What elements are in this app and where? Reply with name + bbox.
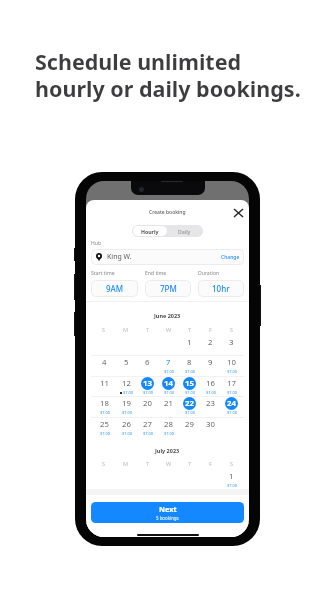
staticText: $7.00 <box>143 431 153 436</box>
staticText: $7.00 <box>143 390 153 395</box>
button[interactable]: 9 <box>204 356 217 369</box>
staticText: 5 bookings <box>156 515 179 521</box>
staticText: T <box>188 460 192 468</box>
button[interactable]: 16 <box>204 377 217 390</box>
staticText: 26 <box>122 419 131 430</box>
button[interactable]: 14 <box>162 377 175 390</box>
staticText: T <box>146 326 150 334</box>
staticText: 29 <box>185 419 194 430</box>
staticText: $7.00 <box>164 390 174 395</box>
staticText: $7.00 <box>164 369 174 374</box>
staticText: 6 <box>145 357 150 368</box>
button[interactable]: 7 <box>162 356 175 369</box>
button[interactable]: Hourly <box>133 226 167 236</box>
staticText: $7.00 <box>185 390 195 395</box>
staticText: July 2023 <box>155 447 180 454</box>
staticText: Daily <box>178 228 191 235</box>
staticText: King W. <box>107 252 132 262</box>
button[interactable]: 17 <box>225 377 238 390</box>
staticText: Create booking <box>149 209 186 216</box>
staticText: $7.00 <box>206 390 216 395</box>
staticText: End time <box>145 270 167 277</box>
staticText: 10hr <box>212 283 230 294</box>
button[interactable]: 4 <box>98 356 111 369</box>
staticText: 30 <box>206 419 215 430</box>
button[interactable]: 1 <box>183 336 196 349</box>
staticText: 2 <box>208 337 213 348</box>
staticText: 18 <box>100 398 109 409</box>
button[interactable]: 10hr <box>198 280 244 297</box>
staticText: $7.00 <box>122 431 132 436</box>
button[interactable]: 28 <box>162 418 175 431</box>
staticText: 21 <box>164 398 173 409</box>
staticText: Hub <box>91 240 102 247</box>
staticText: Duration <box>198 270 220 277</box>
staticText: F <box>209 326 212 334</box>
staticText: 16 <box>206 378 215 389</box>
button[interactable]: 24 <box>225 397 238 410</box>
staticText: 1 <box>187 337 192 348</box>
staticText: Schedule unlimited hourly or daily booki… <box>35 47 301 103</box>
staticText: 13 <box>143 378 152 389</box>
staticText: 25 <box>100 419 109 430</box>
staticText: W <box>166 460 172 468</box>
button[interactable]: 25 <box>98 418 111 431</box>
button[interactable]: 30 <box>204 418 217 431</box>
staticText: Start time <box>91 270 115 277</box>
staticText: June 2023 <box>154 312 181 319</box>
staticText: 14 <box>164 378 173 389</box>
button[interactable]: Next <box>91 502 244 523</box>
button[interactable]: 18 <box>98 397 111 410</box>
button[interactable]: King W. <box>91 249 244 265</box>
staticText: 27 <box>143 419 152 430</box>
staticText: 11 <box>100 378 109 389</box>
button[interactable]: 5 <box>120 356 133 369</box>
staticText: $7.00 <box>100 431 110 436</box>
staticText: $7.00 <box>185 369 195 374</box>
button[interactable]: 21 <box>162 397 175 410</box>
button[interactable]: 7PM <box>145 280 191 297</box>
button[interactable]: 2 <box>204 336 217 349</box>
staticText: 23 <box>206 398 215 409</box>
button[interactable]: 13 <box>141 377 154 390</box>
button[interactable]: 20 <box>141 397 154 410</box>
staticText: 28 <box>164 419 173 430</box>
staticText: 24 <box>227 398 236 409</box>
staticText: Hourly <box>141 228 159 235</box>
button[interactable]: Close <box>231 205 246 220</box>
button[interactable]: 10 <box>225 356 238 369</box>
button[interactable]: 15 <box>183 377 196 390</box>
staticText: Change <box>221 254 240 261</box>
staticText: 1 <box>229 471 234 482</box>
button[interactable]: 6 <box>141 356 154 369</box>
staticText: M <box>123 326 129 334</box>
staticText: 7 <box>166 357 171 368</box>
button[interactable]: 3 <box>225 336 238 349</box>
staticText: 22 <box>185 398 194 409</box>
button[interactable]: 22 <box>183 397 196 410</box>
staticText: 9 <box>208 357 213 368</box>
button[interactable]: 23 <box>204 397 217 410</box>
button[interactable]: 9AM <box>91 280 138 297</box>
staticText: S <box>102 460 106 468</box>
staticText: $7.00 <box>164 431 174 436</box>
staticText: $7.00 <box>185 410 195 415</box>
staticText: T <box>146 460 150 468</box>
button[interactable]: Daily <box>167 226 202 236</box>
staticText: $7.00 <box>227 410 237 415</box>
staticText: 5 <box>124 357 129 368</box>
button[interactable]: 19 <box>120 397 133 410</box>
button[interactable]: 27 <box>141 418 154 431</box>
staticText: S <box>102 326 106 334</box>
button[interactable]: 1 <box>225 470 238 483</box>
button[interactable]: 29 <box>183 418 196 431</box>
staticText: Next <box>159 504 177 514</box>
button[interactable]: 8 <box>183 356 196 369</box>
button[interactable]: 11 <box>98 377 111 390</box>
button[interactable]: 26 <box>120 418 133 431</box>
button[interactable]: 12 <box>120 377 133 390</box>
staticText: $7.00 <box>122 410 132 415</box>
staticText: 9AM <box>106 283 124 294</box>
staticText: 12 <box>122 378 131 389</box>
staticText: T <box>188 326 192 334</box>
